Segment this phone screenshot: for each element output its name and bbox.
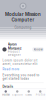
staticText: Everything you need to get started today bbox=[2, 73, 39, 80]
staticText: Aaron Marquez bbox=[8, 42, 22, 50]
staticText: Computer bbox=[11, 17, 34, 22]
staticText: Computing bbox=[14, 25, 31, 29]
button[interactable]: Home bbox=[0, 90, 11, 96]
staticText: Explore bbox=[12, 93, 22, 96]
button[interactable]: Explore bbox=[11, 90, 23, 96]
staticText: Read more bbox=[2, 67, 19, 71]
staticText: Modular Mission bbox=[5, 12, 41, 17]
button[interactable]: Saved bbox=[23, 90, 34, 96]
button[interactable]: Aaron Marquez bbox=[2, 42, 44, 57]
staticText: Product Designer bbox=[8, 50, 21, 57]
button[interactable]: Profile bbox=[34, 90, 46, 96]
button[interactable]: Read more bbox=[2, 67, 19, 71]
staticText: Profile bbox=[36, 93, 45, 96]
staticText: Follow bbox=[33, 48, 42, 51]
staticText: Home bbox=[2, 93, 9, 96]
staticText: Saved bbox=[25, 93, 32, 96]
staticText: Details bbox=[2, 85, 13, 88]
staticText: Lorem ipsum dolor sit amet, consectetur … bbox=[2, 59, 37, 66]
